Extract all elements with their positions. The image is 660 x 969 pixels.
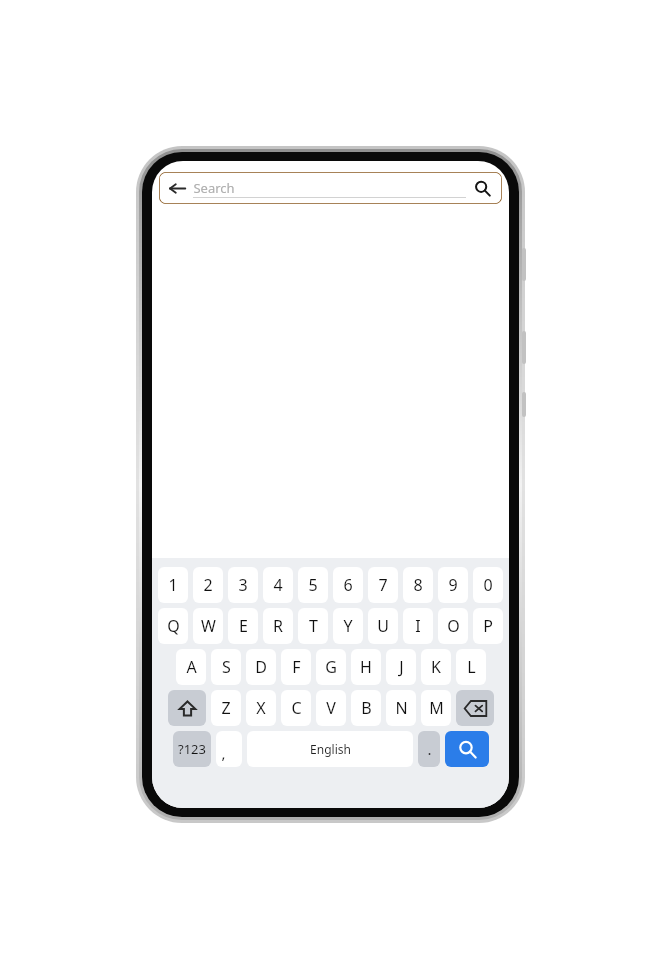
button[interactable]: 1 [158, 567, 188, 603]
staticText: 3 [238, 574, 248, 596]
button[interactable]: X [246, 690, 276, 726]
staticText: A [186, 656, 197, 678]
button[interactable]: Search [471, 177, 493, 199]
staticText: S [222, 656, 231, 678]
staticText: 2 [203, 574, 213, 596]
button[interactable]: 3 [228, 567, 258, 603]
button[interactable]: G [316, 649, 346, 685]
staticText: G [325, 656, 337, 678]
staticText: 5 [308, 574, 318, 596]
staticText: 9 [448, 574, 458, 596]
button[interactable]: 6 [333, 567, 363, 603]
button[interactable]: 8 [403, 567, 433, 603]
button[interactable]: 7 [368, 567, 398, 603]
button[interactable]: B [351, 690, 381, 726]
button[interactable]: Back [166, 177, 188, 199]
button[interactable]: Volume down [522, 331, 526, 364]
button[interactable]: A [176, 649, 206, 685]
staticText: 4 [273, 574, 283, 596]
button[interactable]: F [281, 649, 311, 685]
staticText: C [291, 697, 302, 719]
staticText: Search [193, 179, 235, 197]
staticText: H [360, 656, 372, 678]
staticText: Y [343, 615, 353, 637]
button[interactable]: Y [333, 608, 363, 644]
staticText: 8 [413, 574, 423, 596]
staticText: L [467, 656, 476, 678]
staticText: E [239, 615, 248, 637]
button[interactable]: E [228, 608, 258, 644]
staticText: T [309, 615, 318, 637]
staticText: K [431, 656, 441, 678]
button[interactable]: Q [158, 608, 188, 644]
button[interactable]: U [368, 608, 398, 644]
staticText: ?123 [178, 740, 206, 758]
staticText: N [395, 697, 408, 719]
staticText: English [310, 741, 351, 757]
staticText: 7 [378, 574, 388, 596]
button[interactable]: , [216, 731, 242, 767]
button[interactable]: H [351, 649, 381, 685]
button[interactable]: S [211, 649, 241, 685]
staticText: B [361, 697, 372, 719]
button[interactable]: D [246, 649, 276, 685]
button[interactable]: . [418, 731, 440, 767]
staticText: O [447, 615, 460, 637]
staticText: 0 [483, 574, 493, 596]
button[interactable]: 0 [473, 567, 503, 603]
button[interactable]: I [403, 608, 433, 644]
staticText: 6 [343, 574, 353, 596]
button[interactable]: 9 [438, 567, 468, 603]
staticText: V [326, 697, 336, 719]
button[interactable]: Power [522, 392, 526, 417]
button[interactable]: N [386, 690, 416, 726]
button[interactable]: R [263, 608, 293, 644]
staticText: D [255, 656, 267, 678]
button[interactable]: K [421, 649, 451, 685]
button[interactable]: Back [159, 172, 502, 204]
button[interactable]: W [193, 608, 223, 644]
button[interactable]: M [421, 690, 451, 726]
staticText: X [256, 697, 266, 719]
staticText: I [415, 615, 421, 637]
button[interactable]: 5 [298, 567, 328, 603]
button[interactable]: V [316, 690, 346, 726]
button[interactable]: P [473, 608, 503, 644]
button[interactable]: L [456, 649, 486, 685]
staticText: R [273, 615, 283, 637]
button[interactable]: Backspace [456, 690, 494, 726]
staticText: J [399, 656, 404, 678]
staticText: Z [221, 697, 231, 719]
staticText: Q [167, 615, 180, 637]
staticText: . [427, 739, 432, 759]
button[interactable]: 4 [263, 567, 293, 603]
staticText: U [377, 615, 389, 637]
staticText: 1 [168, 574, 178, 596]
staticText: W [201, 615, 216, 637]
button[interactable]: English [247, 731, 413, 767]
staticText: , [221, 743, 226, 763]
button[interactable]: ?123 [173, 731, 211, 767]
button[interactable]: O [438, 608, 468, 644]
staticText: P [483, 615, 493, 637]
button[interactable]: Volume up [522, 248, 526, 281]
staticText: F [292, 656, 301, 678]
button[interactable]: 2 [193, 567, 223, 603]
button[interactable]: J [386, 649, 416, 685]
button[interactable]: Shift [168, 690, 206, 726]
button[interactable]: T [298, 608, 328, 644]
button[interactable]: Search [445, 731, 489, 767]
button[interactable]: C [281, 690, 311, 726]
staticText: M [429, 697, 444, 719]
button[interactable]: Z [211, 690, 241, 726]
